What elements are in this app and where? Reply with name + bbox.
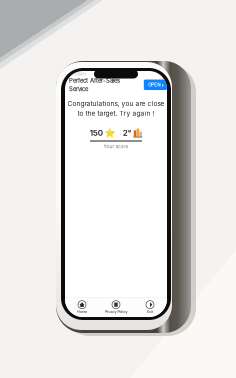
button[interactable]: Privacy Policy <box>99 301 133 314</box>
button[interactable]: Exit <box>133 301 167 314</box>
staticText: Home <box>77 309 87 314</box>
button[interactable]: Home <box>65 301 99 314</box>
staticText: 2° <box>123 128 132 138</box>
staticText: 150 <box>90 128 103 138</box>
button[interactable]: OPEN <box>144 79 167 90</box>
staticText: Congratulations, you are close <box>67 100 164 107</box>
staticText: › <box>161 81 163 88</box>
staticText: ⭐ <box>104 127 116 138</box>
staticText: Exit <box>147 309 153 314</box>
staticText: Service <box>69 85 88 93</box>
staticText: Perfect After-Sales <box>69 77 120 84</box>
staticText: Privacy Policy <box>104 309 127 314</box>
staticText: OPEN <box>148 82 160 88</box>
staticText: to the target. Try again ! <box>77 109 154 117</box>
staticText: Your score <box>103 144 128 149</box>
staticText: ‹ Company <box>68 72 86 76</box>
